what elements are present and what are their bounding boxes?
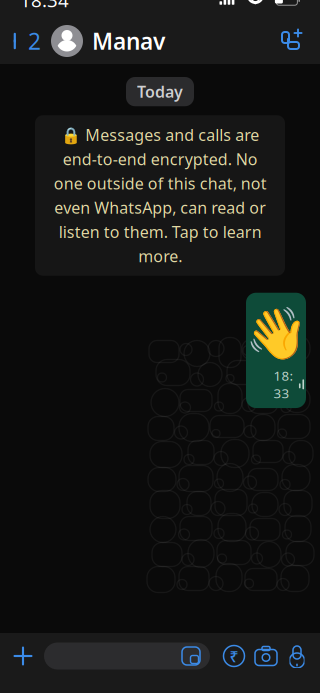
staticText: Manav (92, 26, 165, 56)
staticText: 👋 (244, 305, 307, 363)
button[interactable]: 2 (0, 19, 47, 63)
button[interactable]: Voice message (282, 637, 312, 675)
staticText: ₹ (229, 645, 238, 667)
button[interactable]: Attach (6, 637, 40, 675)
staticText: 2 (28, 26, 41, 56)
staticText: 18:34 (20, 0, 69, 12)
staticText: Today (137, 81, 183, 102)
button[interactable]: Camera (250, 637, 282, 675)
button[interactable]: Message (44, 642, 210, 669)
button[interactable]: Manav (47, 19, 165, 63)
button[interactable]: Add to call (268, 19, 312, 63)
button[interactable]: Payments (218, 637, 250, 675)
staticText: 18:33 (273, 367, 293, 402)
button[interactable]: 🔒 Messages and calls are end-to-end encr… (35, 115, 285, 276)
staticText: 🔒 Messages and calls are end-to-end encr… (53, 124, 266, 267)
